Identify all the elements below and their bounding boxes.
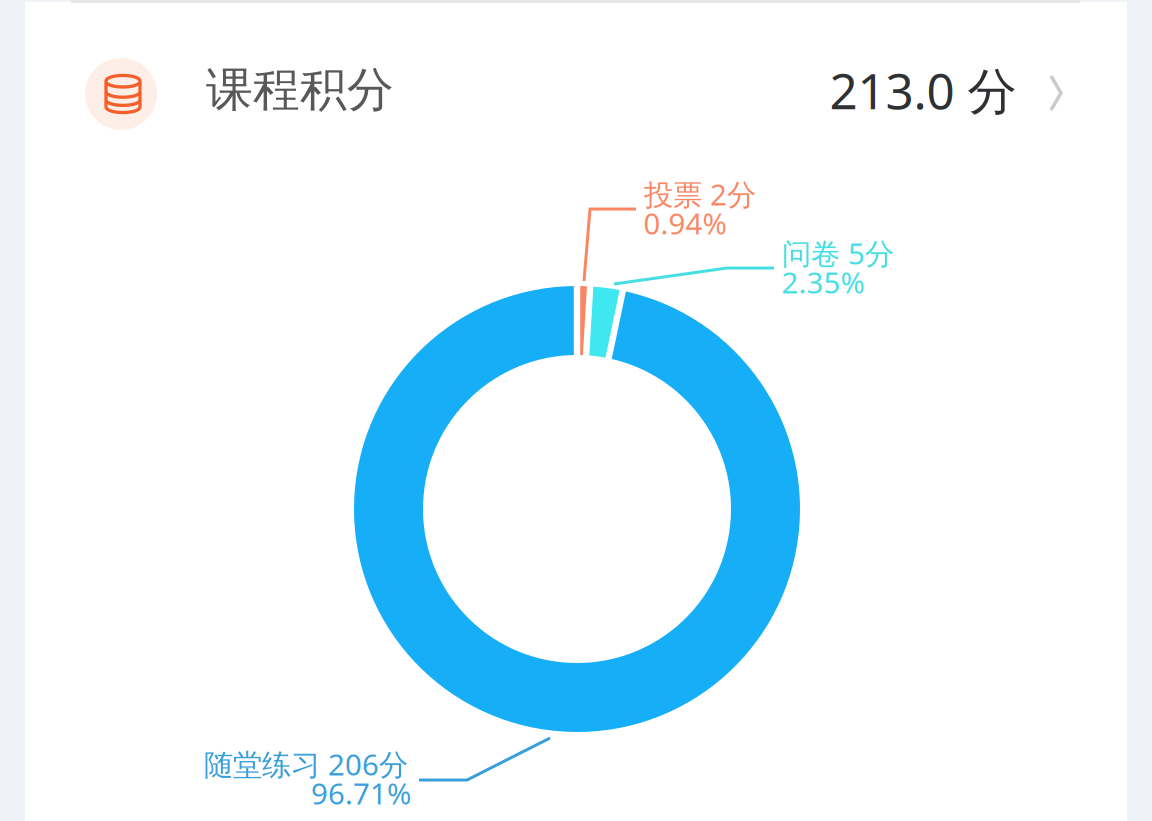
staticText: 213.0 分 xyxy=(829,57,1016,123)
staticText: 2.35% xyxy=(781,262,864,301)
staticText: 课程积分 xyxy=(206,61,394,119)
button[interactable]: 课程积分 213.0 分 xyxy=(25,18,1127,170)
staticText: 投票 2分 xyxy=(644,174,756,213)
staticText: 0.94% xyxy=(643,203,726,242)
staticText: 96.71% xyxy=(311,773,411,812)
staticText: 随堂练习 206分 xyxy=(204,744,408,783)
staticText: 问卷 5分 xyxy=(782,233,894,272)
